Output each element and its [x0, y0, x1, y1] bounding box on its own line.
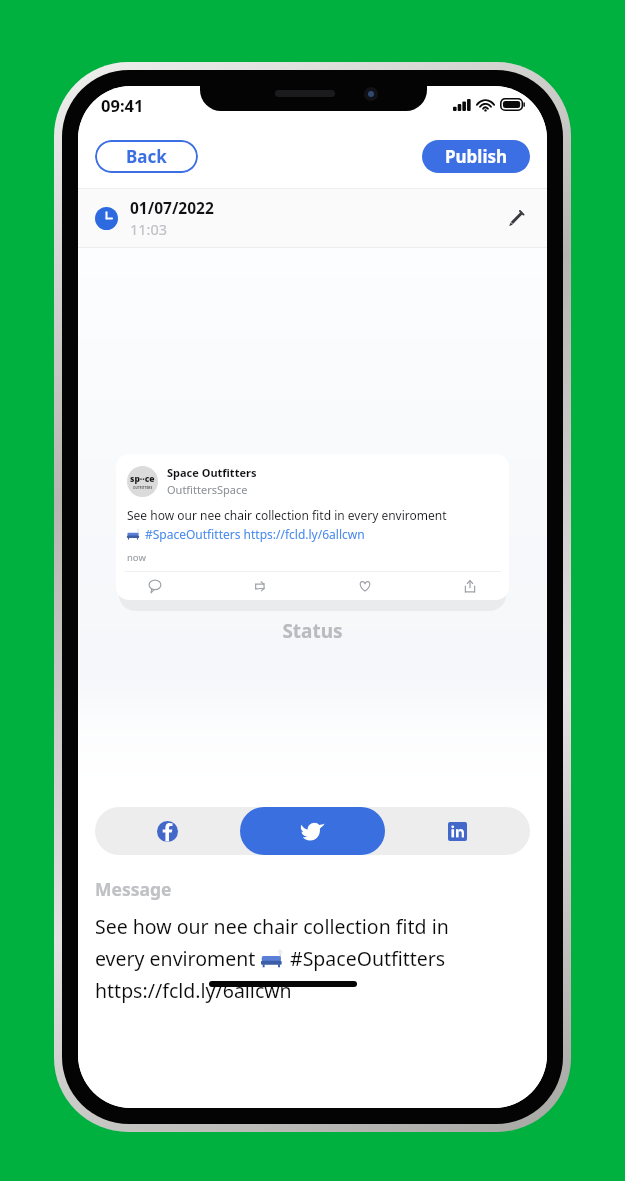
staticText: #SpaceOutfitters https://fcld.ly/6allcwn — [145, 526, 365, 542]
button[interactable]: Back — [95, 140, 198, 173]
staticText: https://fcld.ly/6allcwn — [95, 977, 292, 1004]
button[interactable]: sp··ce — [116, 454, 509, 600]
staticText: now — [127, 551, 146, 564]
staticText: every enviroment — [95, 945, 261, 972]
staticText: 11:03 — [130, 219, 168, 239]
staticText: 01/07/2022 — [130, 197, 214, 218]
button[interactable]: Share — [460, 576, 480, 596]
staticText: #SpaceOutfitters — [285, 945, 446, 972]
staticText: Back — [126, 145, 167, 168]
staticText: sp··ce — [130, 473, 155, 485]
button[interactable]: Retweet — [250, 576, 270, 596]
button[interactable]: Publish — [422, 140, 530, 173]
staticText: 09:41 — [101, 94, 144, 116]
button[interactable]: Edit — [503, 205, 529, 231]
button[interactable]: Like — [355, 576, 375, 596]
button[interactable]: LinkedIn — [385, 807, 530, 855]
staticText: Status — [78, 618, 547, 644]
staticText: Message — [95, 877, 172, 901]
button[interactable]: Reply — [145, 576, 165, 596]
staticText: See how our nee chair collection fitd in… — [127, 507, 447, 523]
staticText: OutfittersSpace — [167, 482, 248, 497]
button[interactable]: 01/07/2022 — [78, 189, 547, 247]
staticText: See how our nee chair collection fitd in — [95, 913, 449, 940]
button[interactable]: Facebook — [95, 807, 240, 855]
staticText: Publish — [445, 145, 508, 168]
staticText: OUTFITTERS — [133, 486, 153, 490]
button[interactable]: Twitter — [240, 807, 385, 855]
staticText: Space Outfitters — [167, 465, 257, 480]
